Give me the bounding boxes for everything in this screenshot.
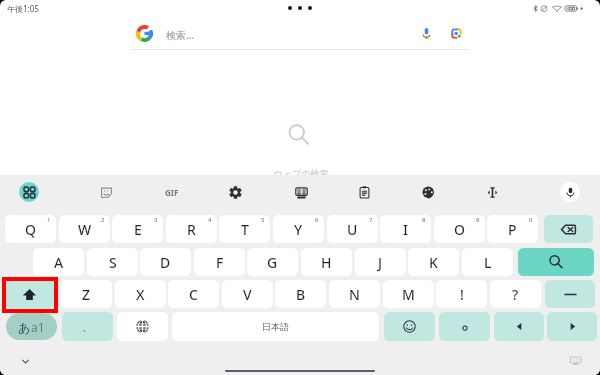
button[interactable]: B (275, 280, 326, 308)
staticText: L (484, 253, 492, 272)
button[interactable]: Q (5, 215, 56, 243)
button[interactable]: C (168, 280, 219, 308)
staticText: N (349, 285, 360, 304)
staticText: 8 (422, 216, 426, 224)
staticText: 、 (82, 320, 93, 334)
staticText: V (243, 285, 252, 304)
staticText: 午後1:05 (7, 3, 39, 14)
staticText: E (134, 220, 142, 239)
staticText: 1 (47, 216, 51, 224)
staticText: GIF (165, 187, 179, 198)
button[interactable]: D (140, 248, 191, 276)
button[interactable]: Hide keyboard (16, 352, 35, 370)
button[interactable]: Search (132, 20, 468, 49)
button[interactable]: Apps (19, 182, 39, 202)
staticText: D (160, 253, 171, 272)
button[interactable]: Switch input mode (6, 313, 57, 340)
button[interactable]: Right (547, 312, 597, 341)
button[interactable]: Stickers (95, 181, 117, 203)
button[interactable]: Dash (545, 280, 595, 308)
staticText: ウェブの検索 (272, 168, 330, 179)
button[interactable]: Theme (417, 181, 439, 203)
button[interactable]: GIF (161, 181, 183, 203)
button[interactable]: Translate (290, 181, 312, 203)
button[interactable]: F (194, 248, 245, 276)
staticText: あ (18, 320, 31, 335)
staticText: ! (460, 285, 464, 304)
staticText: 検索... (166, 28, 195, 42)
staticText: K (429, 253, 438, 272)
button[interactable]: Shift (4, 280, 54, 308)
button[interactable]: Clipboard (353, 181, 375, 203)
button[interactable]: Z (61, 280, 112, 308)
staticText: X (136, 285, 145, 304)
staticText: I (403, 220, 408, 239)
staticText: J (378, 253, 383, 272)
staticText: H (321, 253, 332, 272)
staticText: 3 (154, 216, 158, 224)
button[interactable]: S (87, 248, 138, 276)
button[interactable]: Text editing (481, 181, 503, 203)
staticText: Q (25, 220, 36, 239)
button[interactable]: Settings (224, 181, 246, 203)
staticText: R (187, 220, 196, 239)
staticText: P (508, 220, 517, 239)
staticText: W (78, 220, 92, 239)
button[interactable]: U (327, 215, 378, 243)
staticText: 0 (529, 216, 533, 224)
button[interactable]: G (247, 248, 298, 276)
staticText: O (454, 220, 465, 239)
staticText: F (216, 253, 224, 272)
button[interactable]: ? (490, 280, 541, 308)
button[interactable]: P (487, 215, 538, 243)
staticText: M (402, 285, 415, 304)
staticText: C (189, 285, 198, 304)
button[interactable]: N (329, 280, 380, 308)
button[interactable]: Change keyboard (566, 352, 584, 370)
staticText: G (267, 253, 278, 272)
button[interactable]: T (219, 215, 270, 243)
button[interactable]: Voice search (415, 22, 437, 44)
button[interactable]: ! (436, 280, 487, 308)
button[interactable]: Y (273, 215, 324, 243)
staticText: 7 (369, 216, 373, 224)
button[interactable]: Change language (117, 312, 168, 341)
staticText: S (109, 253, 117, 272)
button[interactable]: J (355, 248, 406, 276)
button[interactable]: H (301, 248, 352, 276)
button[interactable]: Left (494, 312, 544, 341)
button[interactable]: 、 (62, 312, 113, 341)
button[interactable]: 日本語 (172, 312, 379, 341)
button[interactable]: K (408, 248, 459, 276)
button[interactable]: Search (518, 248, 594, 276)
button[interactable]: R (166, 215, 217, 243)
staticText: 6 (315, 216, 319, 224)
staticText: 4 (208, 216, 212, 224)
button[interactable]: Google Lens (445, 22, 467, 44)
button[interactable]: M (383, 280, 434, 308)
button[interactable]: W (59, 215, 110, 243)
staticText: B (296, 285, 306, 304)
button[interactable]: L (462, 248, 513, 276)
button[interactable]: O (434, 215, 485, 243)
staticText: a1 (31, 319, 45, 335)
button[interactable]: V (222, 280, 273, 308)
button[interactable]: E (112, 215, 163, 243)
staticText: Z (82, 285, 91, 304)
button[interactable]: Period (439, 312, 490, 341)
staticText: U (347, 220, 358, 239)
staticText: 2 (101, 216, 105, 224)
staticText: Y (294, 220, 303, 239)
staticText: A (54, 253, 64, 272)
staticText: T (241, 220, 249, 239)
staticText: 日本語 (262, 321, 289, 332)
staticText: ? (512, 285, 519, 304)
staticText: 9 (476, 216, 480, 224)
staticText: 5 (261, 216, 265, 224)
button[interactable]: Emoji (384, 312, 435, 341)
button[interactable]: Voice input (560, 182, 580, 202)
button[interactable]: A (33, 248, 84, 276)
button[interactable]: Backspace (544, 215, 593, 243)
button[interactable]: I (380, 215, 431, 243)
button[interactable]: X (115, 280, 166, 308)
